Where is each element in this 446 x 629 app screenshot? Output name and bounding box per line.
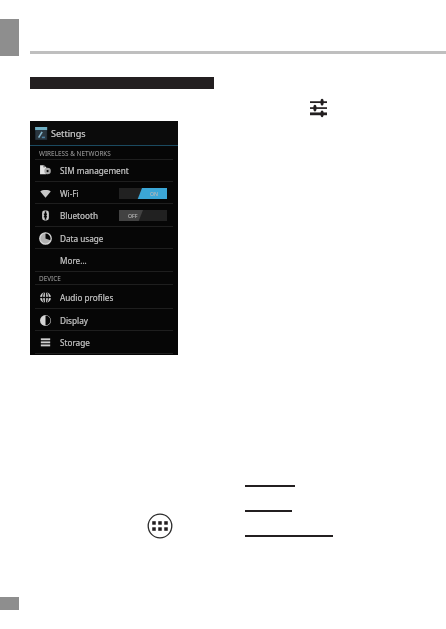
button[interactable]: Display	[30, 309, 178, 332]
staticText: ON	[150, 190, 158, 197]
button[interactable]: Settings	[30, 121, 178, 145]
staticText: DEVICE	[39, 274, 61, 283]
staticText: WIRELESS & NETWORKS	[39, 149, 111, 158]
staticText: Display	[60, 315, 88, 326]
button[interactable]: Bluetooth	[30, 204, 178, 227]
staticText: Settings	[51, 127, 86, 139]
button[interactable]: Data usage	[30, 227, 178, 250]
button[interactable]: Tune settings	[310, 98, 327, 116]
staticText: More...	[60, 255, 87, 266]
staticText: Audio profiles	[60, 292, 114, 303]
staticText: Wi-Fi	[60, 188, 79, 199]
staticText: Storage	[60, 337, 90, 348]
button[interactable]: Toggle off	[119, 210, 167, 221]
button[interactable]: Toggle on	[119, 188, 167, 199]
staticText: OFF	[128, 212, 138, 219]
button[interactable]: SIM management	[30, 159, 178, 182]
staticText: Data usage	[60, 233, 104, 244]
button[interactable]: Audio profiles	[30, 286, 178, 309]
staticText: Bluetooth	[60, 210, 98, 221]
button[interactable]: More...	[30, 249, 178, 272]
button[interactable]: All apps	[147, 513, 173, 539]
button[interactable]: Storage	[30, 331, 178, 354]
staticText: SIM management	[60, 165, 129, 176]
button[interactable]: Wi-Fi	[30, 182, 178, 205]
